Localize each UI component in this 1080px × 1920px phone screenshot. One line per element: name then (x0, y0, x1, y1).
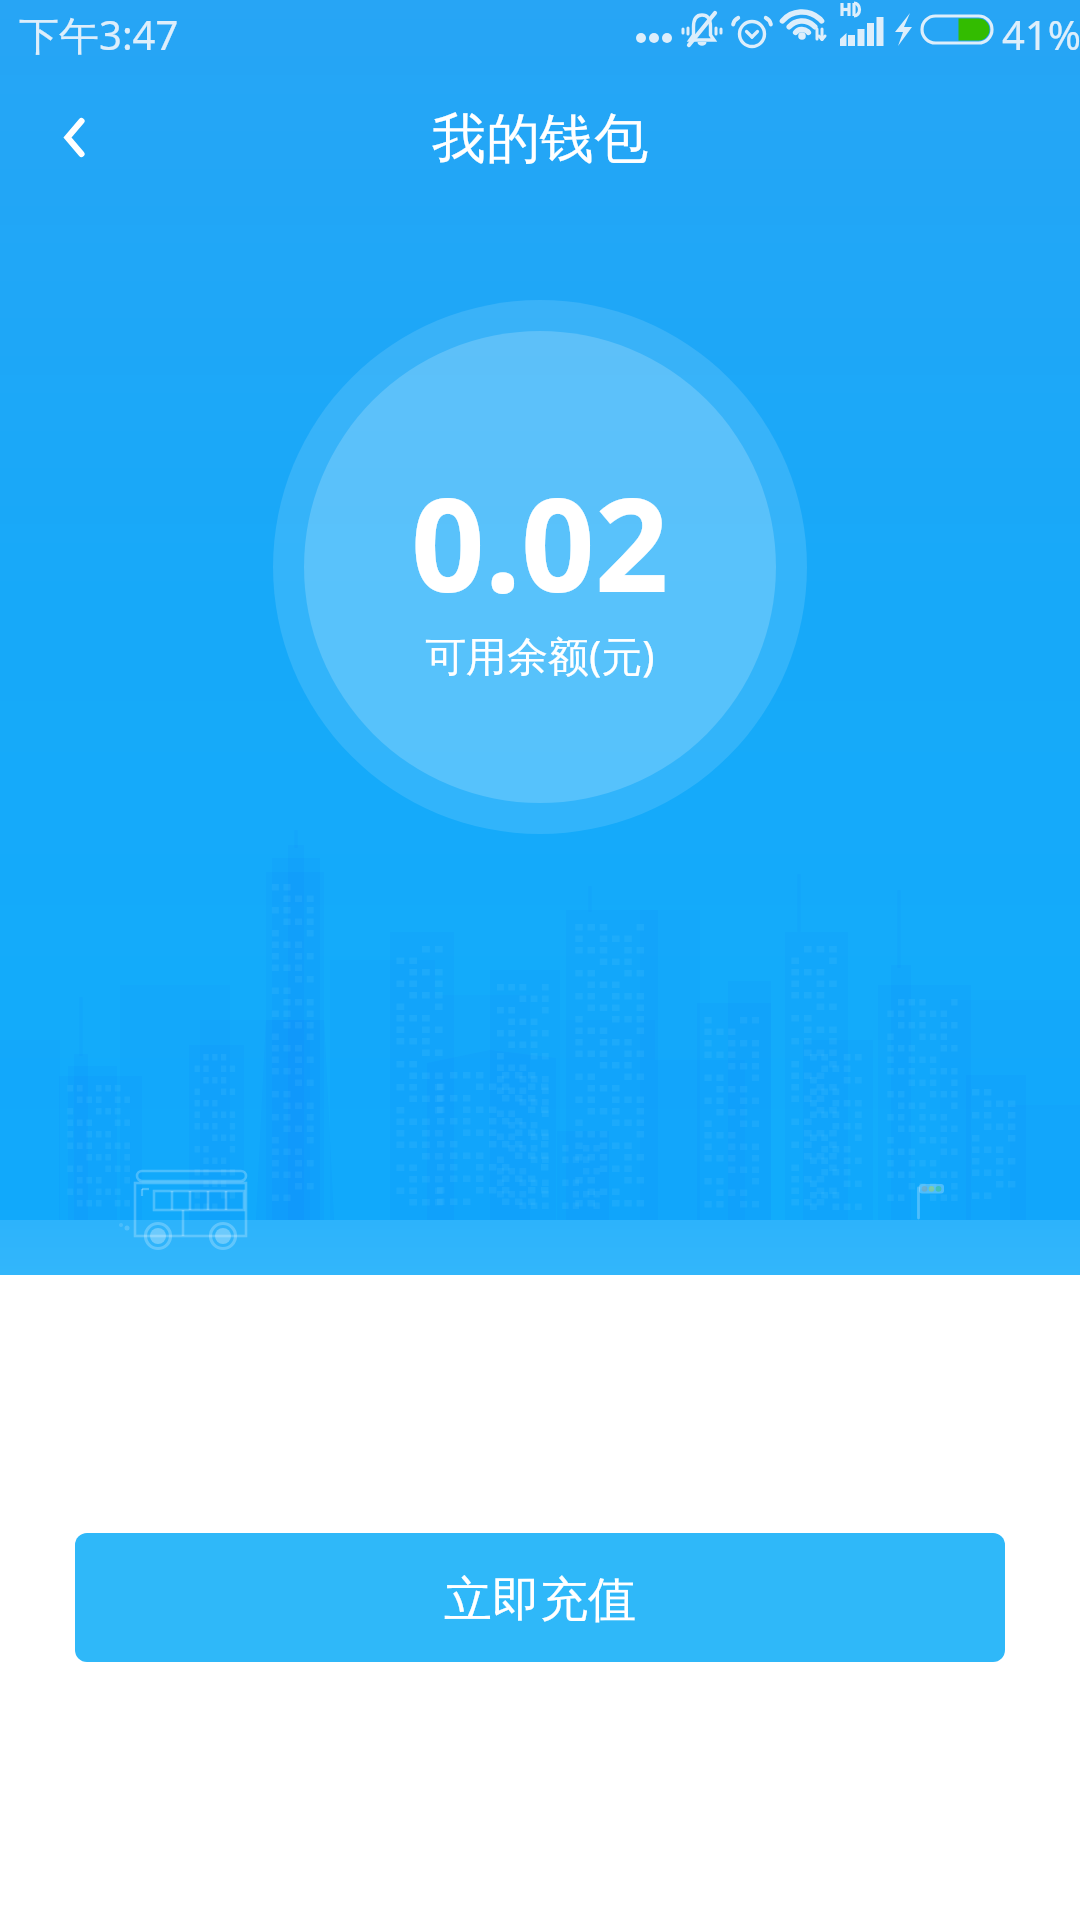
staticText: 0.02 (411, 454, 669, 630)
staticText: 我的钱包 (432, 105, 648, 173)
button[interactable]: Back (25, 95, 110, 180)
staticText: 41% (1002, 7, 1080, 61)
button[interactable]: 可用余额 0.02 元 (304, 331, 776, 803)
staticText: 立即充值 (444, 1570, 636, 1630)
staticText: 下午3:47 (19, 7, 179, 62)
staticText: 可用余额(元) (425, 627, 655, 683)
button[interactable]: 立即充值 (75, 1533, 1005, 1662)
